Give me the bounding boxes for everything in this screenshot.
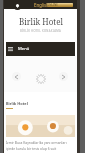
button[interactable]: ONLINE REZERVASYON: [47, 3, 73, 7]
button[interactable]: Previous slide: [12, 72, 21, 81]
staticText: BİRLİK HOTEL KONAKLAMA: [20, 29, 62, 33]
button[interactable]: Next slide: [59, 72, 68, 81]
staticText: Menü: [18, 46, 30, 52]
staticText: İzmir Buca Kaynaklar'da yanı ormanları i…: [6, 140, 75, 151]
staticText: Birlik Hotel: [6, 101, 28, 106]
button[interactable]: Open menu: [7, 46, 13, 52]
staticText: Birlik Hotel: [19, 16, 63, 27]
button[interactable]: Location: [13, 1, 22, 10]
button[interactable]: English: [34, 2, 49, 8]
staticText: ONLINE REZERVASYON: [47, 3, 73, 7]
button[interactable]: Menü: [18, 46, 30, 52]
